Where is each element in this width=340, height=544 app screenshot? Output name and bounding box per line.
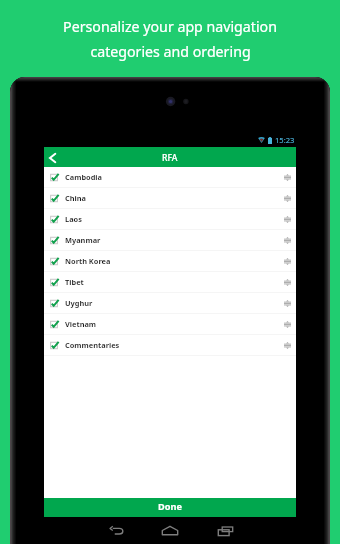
button[interactable]: Uyghur xyxy=(44,293,296,314)
button[interactable]: Tibet xyxy=(44,272,296,293)
staticText: North Korea xyxy=(65,256,111,266)
staticText: Laos xyxy=(65,214,82,224)
staticText: 15:23 xyxy=(275,135,295,145)
button[interactable]: Back xyxy=(100,517,134,544)
button[interactable]: Laos xyxy=(44,209,296,230)
button[interactable]: Recent apps xyxy=(208,517,242,544)
staticText: categories and ordering xyxy=(90,42,251,61)
staticText: RFA xyxy=(162,152,178,164)
staticText: Vietnam xyxy=(65,319,97,329)
staticText: Tibet xyxy=(65,277,84,287)
button[interactable]: Done xyxy=(44,498,296,517)
button[interactable]: Myanmar xyxy=(44,230,296,251)
staticText: Commentaries xyxy=(65,340,120,350)
staticText: Uyghur xyxy=(65,298,93,308)
button[interactable]: Vietnam xyxy=(44,314,296,335)
staticText: Personalize your app navigation xyxy=(63,17,277,36)
button[interactable]: Cambodia xyxy=(44,167,296,188)
staticText: Myanmar xyxy=(65,235,101,245)
button[interactable]: Commentaries xyxy=(44,335,296,356)
button[interactable]: Back xyxy=(44,147,61,168)
staticText: Cambodia xyxy=(65,172,102,182)
button[interactable]: Home xyxy=(153,517,187,544)
button[interactable]: China xyxy=(44,188,296,209)
button[interactable]: North Korea xyxy=(44,251,296,272)
staticText: Done xyxy=(158,500,182,513)
staticText: China xyxy=(65,193,86,203)
